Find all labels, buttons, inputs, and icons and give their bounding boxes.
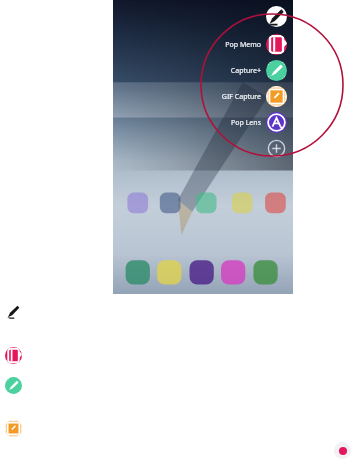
- button[interactable]: Air command: [266, 6, 287, 27]
- button[interactable]: Capture plus: [5, 377, 22, 394]
- button[interactable]: Pop Memo: [5, 347, 22, 364]
- button[interactable]: Capture+: [230, 60, 289, 81]
- button[interactable]: Record: [334, 442, 351, 459]
- button[interactable]: Pop Lens: [231, 112, 289, 133]
- staticText: GIF Capture: [221, 92, 261, 102]
- staticText: Pop Lens: [231, 118, 261, 128]
- staticText: Capture+: [230, 66, 261, 76]
- staticText: Pop Memo: [225, 40, 261, 50]
- button[interactable]: GIF Capture: [221, 86, 289, 107]
- button[interactable]: Add shortcut: [266, 138, 287, 159]
- button[interactable]: GIF Capture: [5, 420, 22, 437]
- button[interactable]: Pop Memo: [225, 34, 289, 55]
- button[interactable]: Air command pen: [5, 303, 22, 320]
